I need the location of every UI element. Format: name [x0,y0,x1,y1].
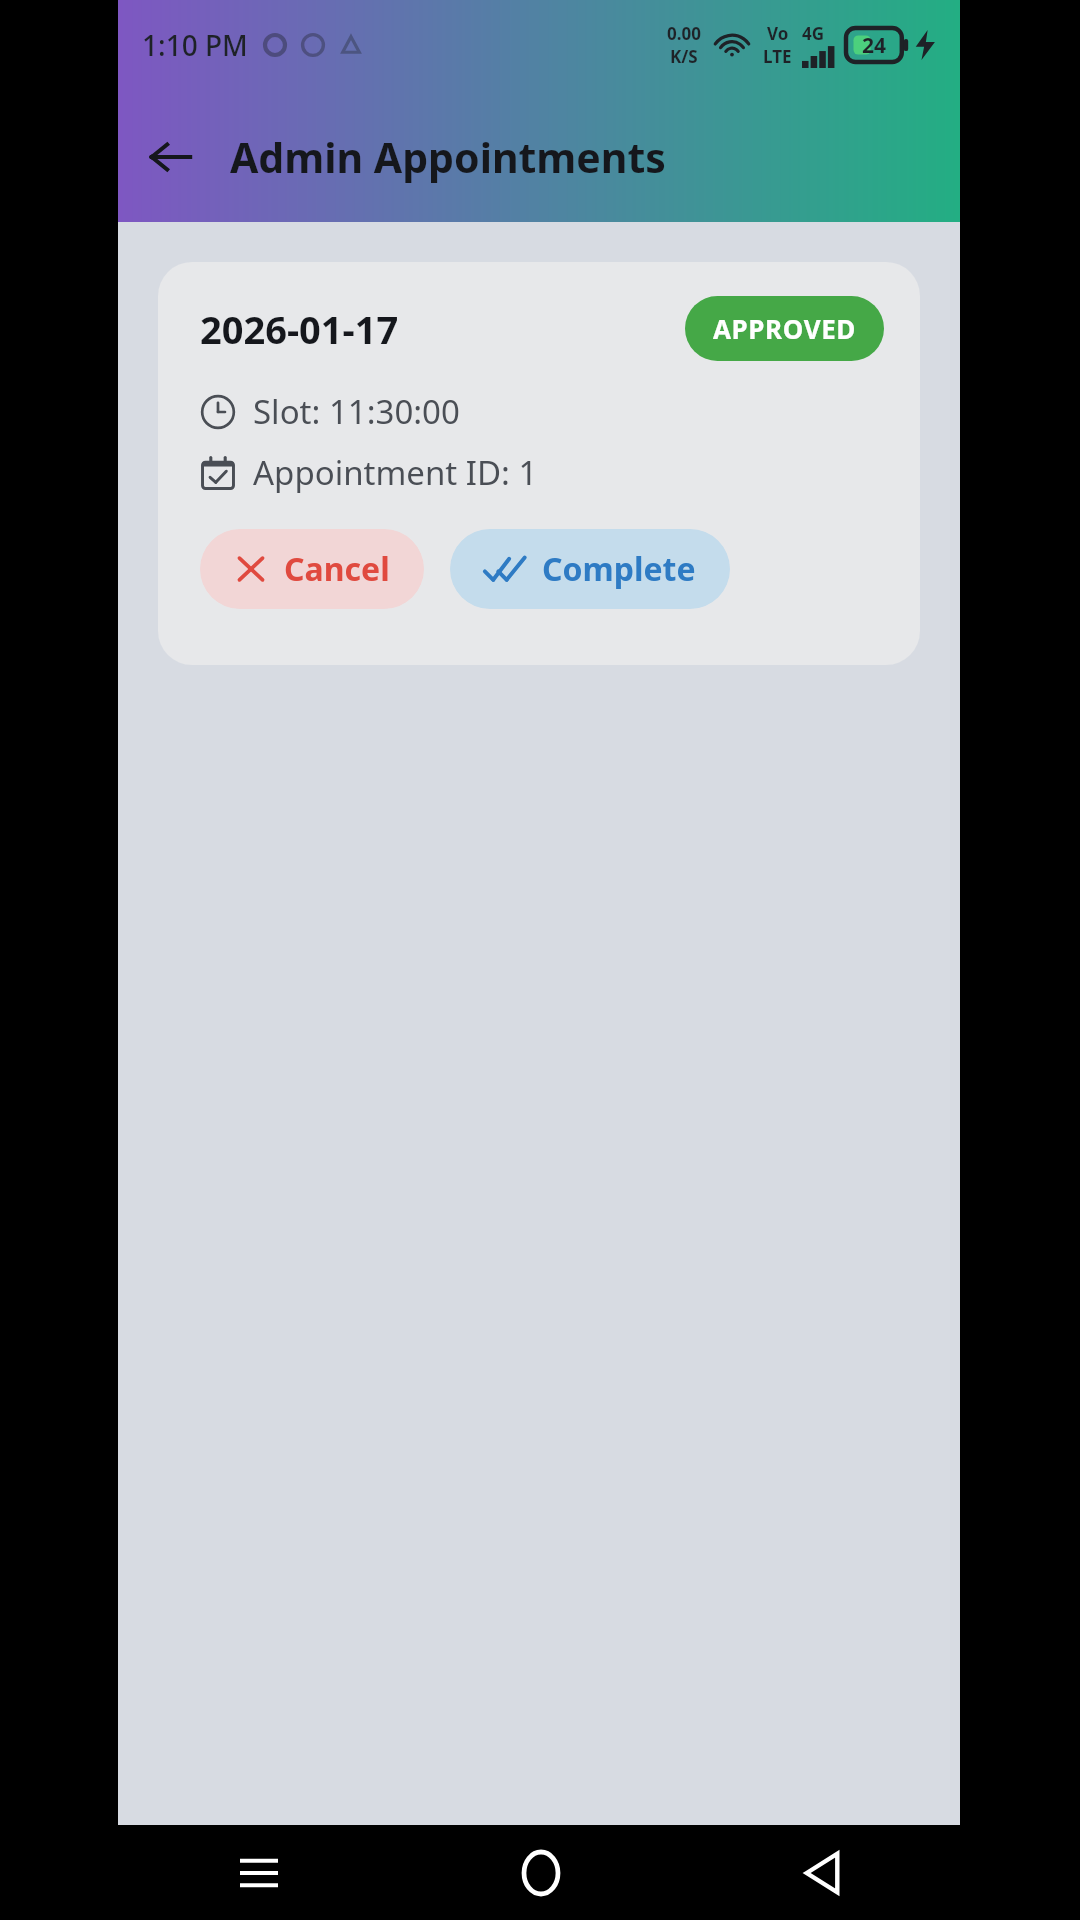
staticText: Admin Appointments [230,129,666,185]
button[interactable]: Home [400,1825,681,1920]
staticText: Cancel [284,547,390,591]
staticText: Complete [542,547,696,591]
button[interactable]: Back [681,1825,962,1920]
button[interactable]: Back [128,115,212,199]
staticText: 4G [802,22,825,45]
staticText: K/S [670,45,698,68]
button[interactable]: Recent apps [118,1825,400,1920]
staticText: APPROVED [713,311,856,346]
staticText: 0.00 [667,22,701,45]
button[interactable]: Complete [450,529,730,609]
staticText: Vo [767,22,789,45]
button[interactable]: 2026-01-17 [158,262,920,665]
staticText: Slot: 11:30:00 [253,389,460,434]
button[interactable]: APPROVED [685,296,884,361]
staticText: 2026-01-17 [200,303,399,355]
staticText: 1:10 PM [142,26,248,64]
staticText: 24 [862,31,887,60]
button[interactable]: Cancel [200,529,424,609]
staticText: Appointment ID: 1 [253,450,538,495]
staticText: LTE [763,45,792,68]
